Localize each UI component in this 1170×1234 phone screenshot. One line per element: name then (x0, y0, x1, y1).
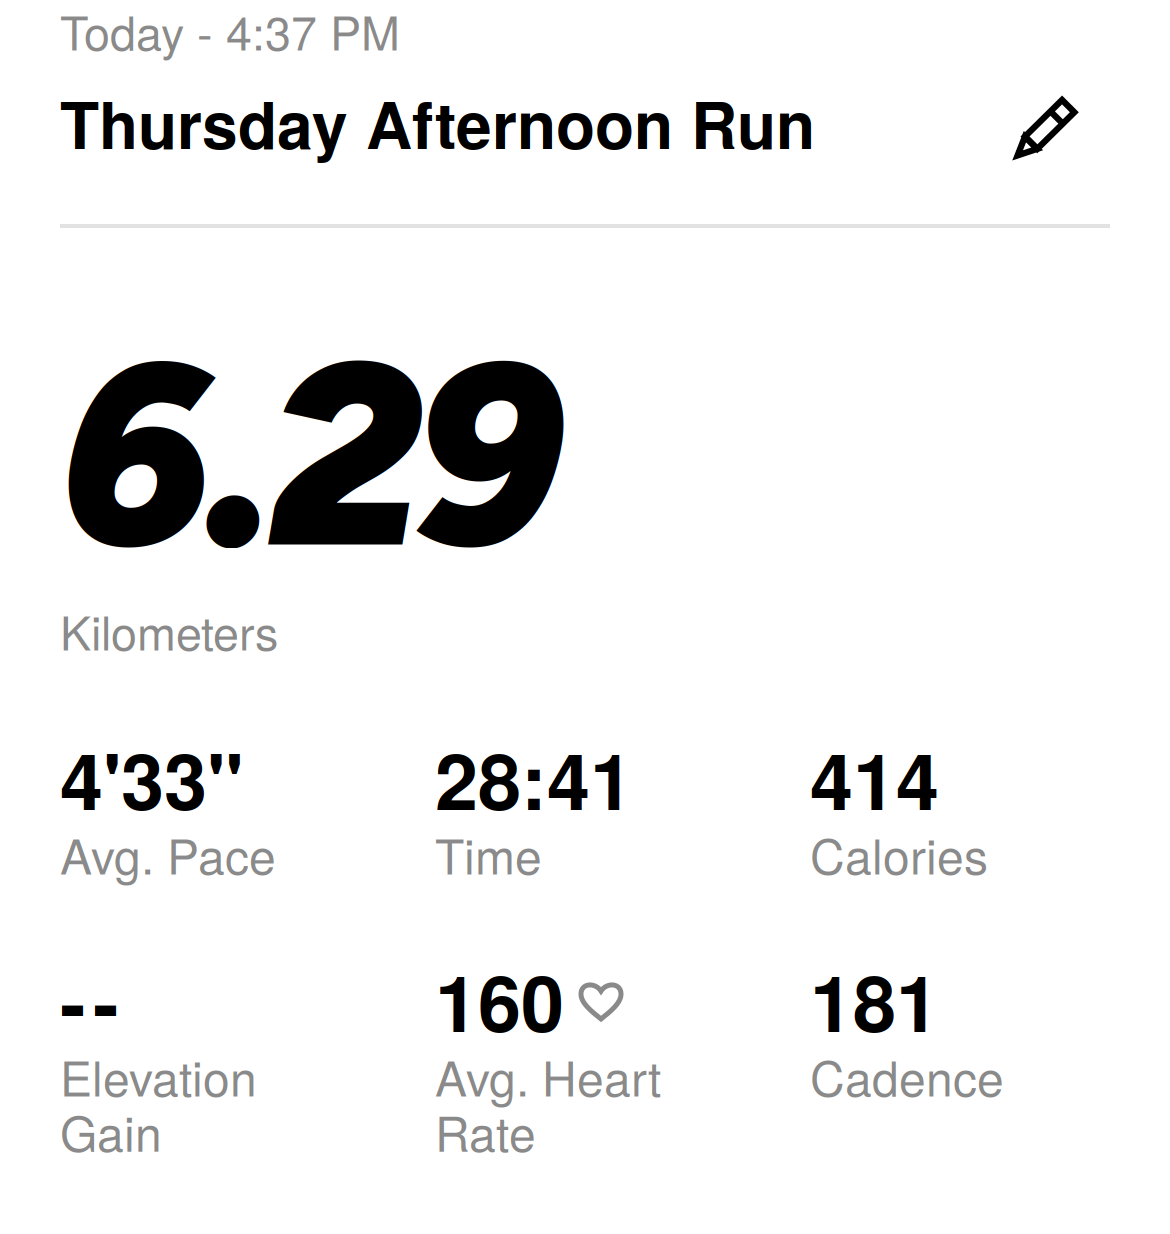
staticText: 6.29 (60, 300, 564, 609)
staticText: Today - 4:37 PM (60, 0, 400, 64)
staticText: 160 (435, 945, 564, 1056)
button[interactable]: Edit (999, 81, 1095, 177)
staticText: 28:41 (435, 723, 633, 834)
staticText: 414 (810, 723, 939, 834)
staticText: Gain (60, 1097, 162, 1165)
staticText: Time (435, 819, 542, 888)
staticText: Thursday Afternoon Run (60, 77, 815, 169)
staticText: Kilometers (60, 597, 278, 664)
staticText: Rate (435, 1097, 536, 1165)
staticText: Elevation (60, 1041, 257, 1110)
staticText: 4'33" (60, 723, 244, 834)
staticText: Calories (810, 819, 988, 888)
staticText: Avg. Pace (60, 819, 276, 888)
staticText: Avg. Heart (435, 1041, 661, 1110)
staticText: 181 (810, 945, 939, 1056)
staticText: -- (60, 945, 119, 1056)
staticText: Cadence (810, 1041, 1004, 1110)
